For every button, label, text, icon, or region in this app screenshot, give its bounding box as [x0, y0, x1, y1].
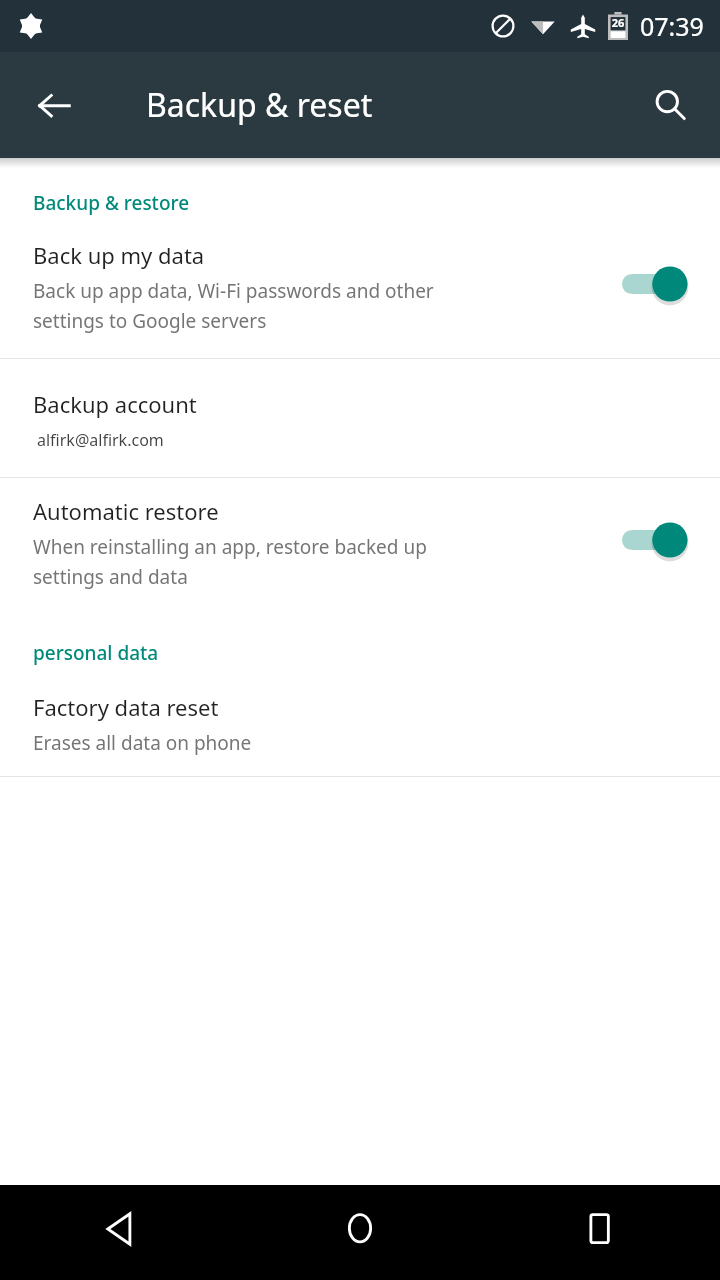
button[interactable]: Back up my data: [0, 236, 720, 342]
button[interactable]: Toggle: [622, 262, 694, 306]
staticText: Backup & restore: [33, 190, 190, 216]
staticText: Backup account: [33, 389, 197, 419]
staticText: Erases all data on phone: [33, 730, 252, 756]
staticText: Back up my data: [33, 240, 205, 270]
button[interactable]: Toggle: [622, 518, 694, 562]
staticText: Factory data reset: [33, 692, 219, 722]
button[interactable]: Automatic restore: [0, 492, 720, 598]
staticText: Back up app data, Wi-Fi passwords and ot…: [33, 278, 434, 304]
button[interactable]: Back: [0, 1185, 240, 1280]
button[interactable]: Factory data reset: [0, 688, 720, 776]
staticText: Backup & reset: [146, 83, 373, 127]
staticText: 26: [608, 15, 628, 30]
staticText: settings and data: [33, 564, 188, 590]
button[interactable]: Back: [22, 73, 86, 137]
staticText: personal data: [33, 640, 159, 666]
staticText: alfirk@alfirk.com: [37, 429, 164, 451]
button[interactable]: Search: [638, 73, 702, 137]
staticText: 07:39: [640, 9, 704, 43]
button[interactable]: Backup account: [0, 359, 720, 477]
staticText: Automatic restore: [33, 496, 219, 526]
staticText: When reinstalling an app, restore backed…: [33, 534, 427, 560]
staticText: settings to Google servers: [33, 308, 267, 334]
button[interactable]: Recent apps: [480, 1185, 720, 1280]
button[interactable]: Home: [240, 1185, 480, 1280]
